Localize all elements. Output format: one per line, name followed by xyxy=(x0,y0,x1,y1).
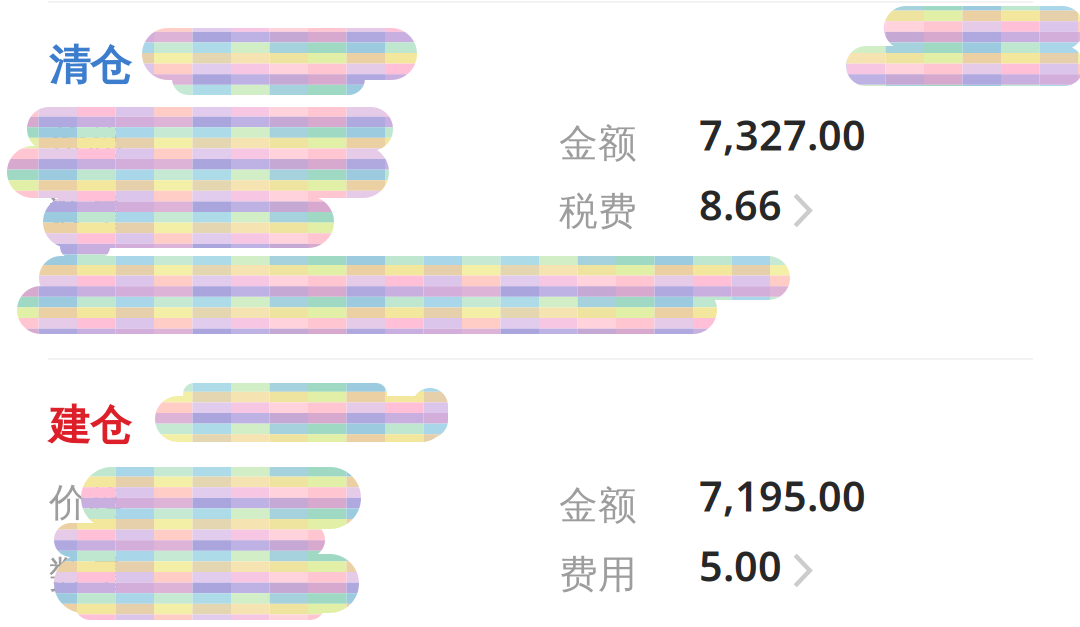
staticText: 7,327.00 xyxy=(699,107,866,162)
staticText: 清仓 xyxy=(49,40,131,91)
staticText: 数量 xyxy=(49,190,127,237)
staticText: 金额 xyxy=(559,120,637,167)
button[interactable]: 建仓 xyxy=(0,360,1080,627)
staticText: 价格 xyxy=(49,479,127,526)
staticText: 8.66 xyxy=(699,177,782,232)
staticText: 建仓 xyxy=(49,400,131,451)
staticText: 数量 xyxy=(49,551,127,598)
staticText: 价格 xyxy=(49,118,127,165)
staticText: 费用 xyxy=(559,551,637,598)
staticText: 金额 xyxy=(559,482,637,529)
staticText: 7,195.00 xyxy=(699,468,866,523)
staticText: 税费 xyxy=(559,188,637,235)
button[interactable]: 清仓 xyxy=(0,0,1080,358)
staticText: 5.00 xyxy=(699,538,782,593)
